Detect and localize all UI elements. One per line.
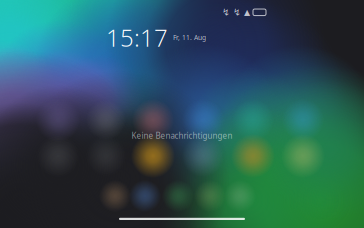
staticText: Keine Benachrichtigungen	[131, 130, 232, 141]
staticText: 15:17	[106, 22, 168, 53]
staticText: ↯	[222, 7, 230, 18]
staticText: ↯	[233, 7, 241, 18]
staticText: Fr, 11. Aug	[173, 33, 206, 42]
staticText: ▲	[244, 8, 250, 17]
